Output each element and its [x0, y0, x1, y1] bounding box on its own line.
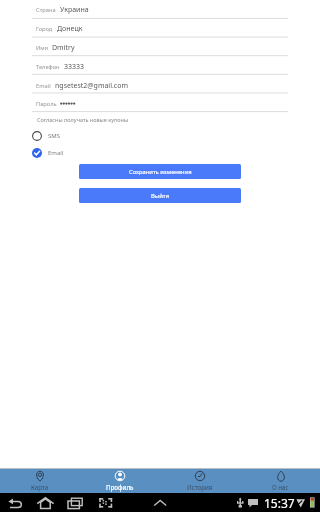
button[interactable]: SMS — [0, 127, 320, 144]
staticText: Email — [48, 149, 64, 157]
staticText: Email — [36, 82, 51, 90]
staticText: Телефон — [36, 63, 60, 71]
button[interactable]: История — [160, 469, 240, 493]
staticText: 33333 — [64, 62, 85, 72]
staticText: Пароль — [36, 100, 57, 108]
button[interactable]: Show keyboard — [150, 496, 170, 510]
staticText: Профиль — [106, 483, 134, 491]
staticText: Украина — [60, 5, 89, 15]
button[interactable]: Телефон — [0, 57, 320, 76]
button[interactable]: Пароль — [0, 95, 320, 112]
button[interactable]: Email — [0, 144, 320, 161]
button[interactable]: Выйти — [79, 188, 241, 203]
staticText: О нас — [272, 483, 289, 491]
button[interactable]: Сохранить изменения — [79, 164, 241, 179]
button[interactable]: Back — [6, 496, 26, 510]
staticText: 15:37 — [264, 495, 295, 511]
staticText: SMS — [48, 132, 61, 140]
button[interactable]: Email — [0, 76, 320, 95]
staticText: ngsetest2@gmail.com — [55, 81, 128, 91]
staticText: Донецк — [57, 24, 83, 34]
button[interactable]: Город — [0, 19, 320, 38]
staticText: Dmitry — [52, 43, 75, 53]
staticText: Имя — [36, 44, 48, 52]
staticText: Сохранить изменения — [129, 168, 192, 176]
staticText: Согласны получать новые купоны — [37, 116, 129, 123]
staticText: Карта — [31, 483, 49, 491]
button[interactable]: Профиль — [80, 469, 160, 493]
button[interactable]: Страна — [0, 0, 320, 19]
staticText: Город — [36, 25, 53, 33]
button[interactable]: Screenshot — [96, 496, 116, 510]
button[interactable]: Имя — [0, 38, 320, 57]
button[interactable]: О нас — [240, 469, 320, 493]
staticText: Страна — [36, 6, 56, 14]
staticText: История — [187, 483, 213, 491]
staticText: Выйти — [151, 192, 170, 200]
button[interactable]: Карта — [0, 469, 80, 493]
button[interactable]: Recent apps — [66, 496, 86, 510]
button[interactable]: Home — [36, 496, 56, 510]
